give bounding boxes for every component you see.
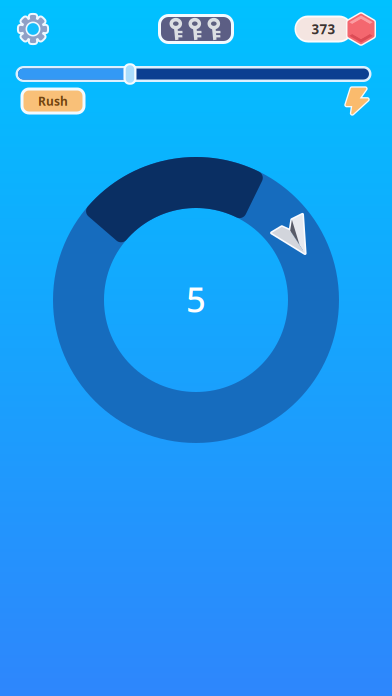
button[interactable]: Rush [22,89,84,113]
button[interactable]: Gems: 373 [294,12,379,46]
button[interactable]: Settings [10,6,56,52]
button[interactable]: Keys [159,15,232,42]
button[interactable]: Boost [340,84,374,118]
staticText: Rush [38,93,68,109]
staticText: 373 [311,20,335,38]
staticText: 5 [186,276,206,322]
